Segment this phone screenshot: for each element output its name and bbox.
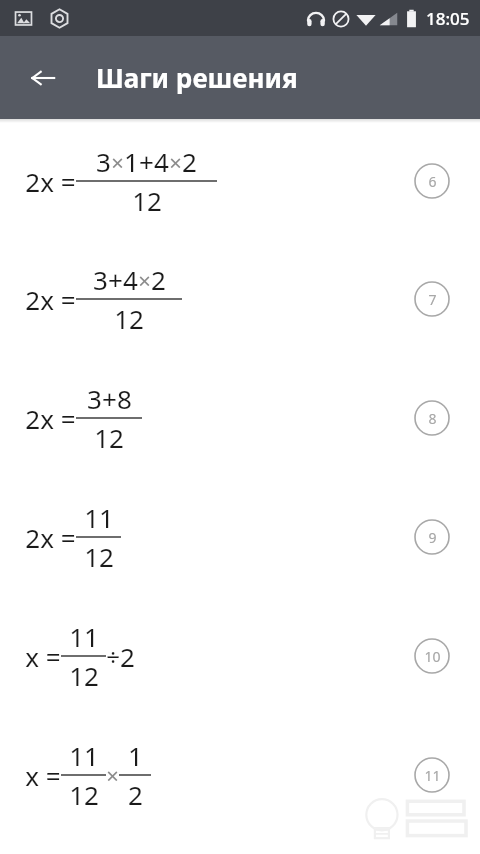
staticText: 11 bbox=[69, 619, 99, 654]
button[interactable]: x = bbox=[0, 596, 480, 715]
staticText: 3 bbox=[87, 381, 102, 416]
staticText: 12 bbox=[84, 539, 114, 574]
staticText: 6 bbox=[428, 172, 437, 191]
staticText: x = bbox=[25, 758, 61, 793]
staticText: 10 bbox=[424, 647, 441, 666]
staticText: 2 bbox=[120, 639, 135, 674]
staticText: ÷ bbox=[106, 640, 120, 673]
staticText: 12 bbox=[69, 658, 99, 693]
staticText: 7 bbox=[428, 290, 437, 309]
staticText: 12 bbox=[69, 777, 99, 812]
button[interactable]: 2x = bbox=[0, 358, 480, 477]
staticText: 4 bbox=[154, 144, 169, 179]
staticText: 2 bbox=[151, 262, 166, 297]
other: Step 11 bbox=[414, 757, 450, 793]
button[interactable]: 2x = bbox=[0, 239, 480, 358]
staticText: 2 bbox=[128, 777, 143, 812]
staticText: 2 bbox=[182, 144, 197, 179]
staticText: 2x = bbox=[25, 401, 76, 436]
staticText: 11 bbox=[69, 738, 99, 773]
staticText: 11 bbox=[84, 500, 114, 535]
staticText: 1 bbox=[124, 144, 139, 179]
button[interactable]: x = bbox=[0, 715, 480, 834]
staticText: 2x = bbox=[25, 520, 76, 555]
button[interactable]: 2x = bbox=[0, 477, 480, 596]
staticText: + bbox=[102, 381, 117, 416]
other: Step 8 bbox=[414, 400, 450, 436]
other: Step 7 bbox=[414, 281, 450, 317]
staticText: 8 bbox=[428, 409, 437, 428]
staticText: x = bbox=[25, 639, 61, 674]
staticText: × bbox=[138, 265, 151, 295]
staticText: × bbox=[111, 147, 124, 177]
staticText: 1 bbox=[128, 738, 143, 773]
other: Step 10 bbox=[414, 638, 450, 674]
staticText: Шаги решения bbox=[96, 60, 298, 95]
staticText: 11 bbox=[424, 766, 441, 785]
staticText: 4 bbox=[123, 262, 138, 297]
staticText: 12 bbox=[132, 183, 162, 218]
staticText: 3 bbox=[96, 144, 111, 179]
button[interactable]: 2x = bbox=[0, 123, 480, 239]
staticText: 18:05 bbox=[426, 7, 470, 30]
staticText: 9 bbox=[428, 528, 437, 547]
staticText: × bbox=[169, 147, 182, 177]
button[interactable]: Back bbox=[22, 57, 64, 99]
other: Step 9 bbox=[414, 519, 450, 555]
staticText: × bbox=[106, 760, 119, 790]
staticText: 2x = bbox=[25, 282, 76, 317]
staticText: + bbox=[139, 144, 154, 179]
other: Step 6 bbox=[414, 163, 450, 199]
staticText: 3 bbox=[93, 262, 108, 297]
staticText: 2x = bbox=[25, 164, 76, 199]
staticText: 8 bbox=[117, 381, 132, 416]
staticText: + bbox=[108, 262, 123, 297]
staticText: 12 bbox=[94, 420, 124, 455]
staticText: 12 bbox=[114, 301, 144, 336]
